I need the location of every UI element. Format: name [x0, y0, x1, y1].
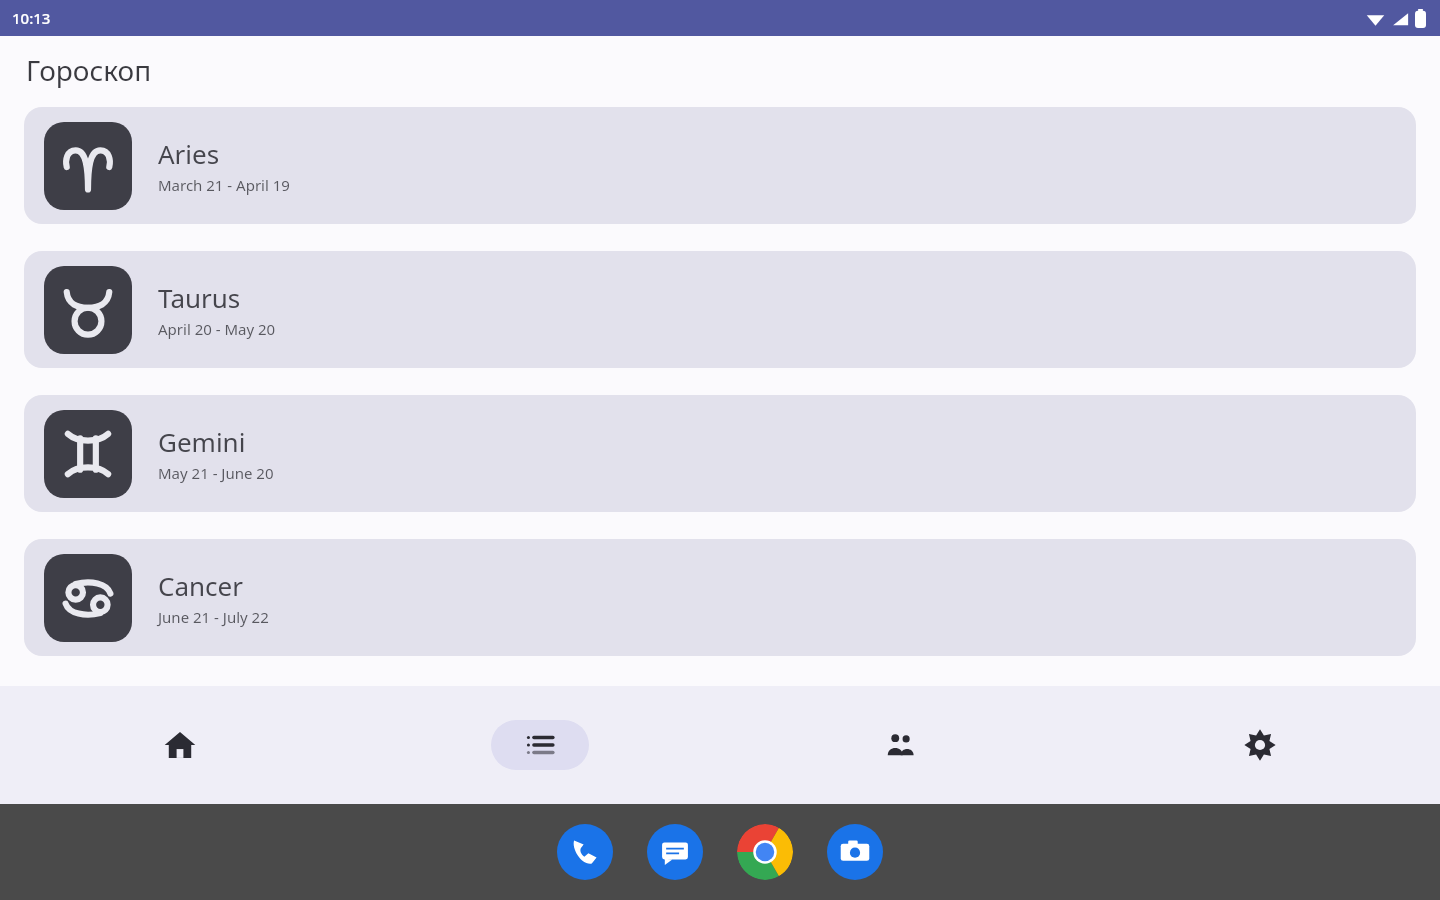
button[interactable]: Camera: [827, 824, 883, 880]
button[interactable]: Taurus: [24, 251, 1416, 368]
button[interactable]: Settings: [1080, 686, 1440, 804]
button[interactable]: Cancer: [24, 539, 1416, 656]
staticText: May 21 - June 20: [158, 463, 274, 483]
button[interactable]: Aries: [24, 107, 1416, 224]
button[interactable]: List: [360, 686, 720, 804]
staticText: Gemini: [158, 424, 246, 459]
staticText: June 21 - July 22: [158, 607, 269, 627]
button[interactable]: Messages: [647, 824, 703, 880]
button[interactable]: Home: [0, 686, 360, 804]
button[interactable]: People: [720, 686, 1080, 804]
button[interactable]: Gemini: [24, 395, 1416, 512]
staticText: Cancer: [158, 568, 243, 603]
staticText: 10:13: [12, 8, 51, 28]
staticText: Гороскоп: [26, 51, 152, 89]
button[interactable]: Phone: [557, 824, 613, 880]
staticText: April 20 - May 20: [158, 319, 276, 339]
staticText: March 21 - April 19: [158, 175, 290, 195]
staticText: Aries: [158, 136, 220, 171]
staticText: Taurus: [158, 280, 241, 315]
button[interactable]: Chrome: [737, 824, 793, 880]
